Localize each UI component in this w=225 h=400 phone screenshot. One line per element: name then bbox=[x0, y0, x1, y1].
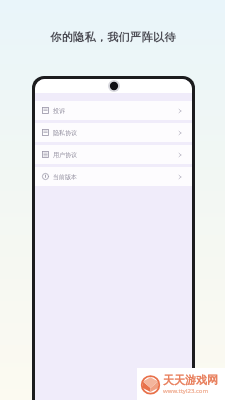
staticText: 投诉 bbox=[53, 107, 65, 115]
staticText: 你的隐私，我们严阵以待 bbox=[50, 30, 176, 44]
staticText: 隐私协议 bbox=[53, 129, 77, 137]
button[interactable]: 隐私协议 bbox=[35, 123, 192, 142]
staticText: 当前版本 bbox=[53, 173, 77, 181]
button[interactable]: 用户协议 bbox=[35, 145, 192, 164]
other: 打开 隐私协议 bbox=[175, 128, 185, 138]
other: 打开 当前版本 bbox=[175, 172, 185, 182]
other: 打开 用户协议 bbox=[175, 150, 185, 160]
other: 打开 投诉 bbox=[175, 106, 185, 116]
button[interactable]: 投诉 bbox=[35, 101, 192, 120]
staticText: 用户协议 bbox=[53, 151, 77, 159]
staticText: www.ttyl23.com bbox=[163, 387, 209, 395]
staticText: 天天游戏网 bbox=[163, 373, 218, 387]
button[interactable]: 当前版本 bbox=[35, 167, 192, 186]
